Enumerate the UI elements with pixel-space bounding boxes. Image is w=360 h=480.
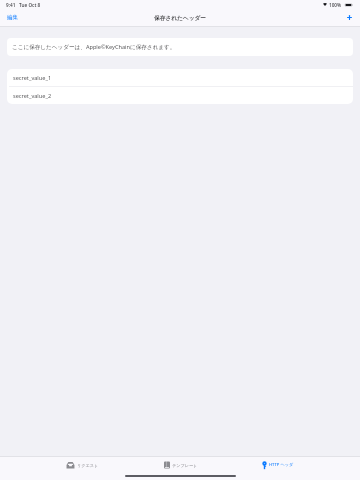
staticText: 100%	[329, 2, 342, 8]
staticText: secret_value_2	[13, 92, 52, 100]
staticText: リクエスト	[77, 463, 99, 468]
staticText: HTTP ヘッダ	[269, 462, 294, 468]
staticText: Tue Oct 8	[19, 2, 41, 8]
staticText: 9:41	[6, 2, 16, 8]
staticText: ここに保存したヘッダーは、Apple©KeyChainに保存されます。	[12, 43, 176, 51]
button[interactable]: 編集	[0, 13, 24, 24]
staticText: 編集	[7, 14, 18, 21]
staticText: テンプレート	[172, 463, 198, 468]
button[interactable]: リクエスト	[65, 460, 100, 470]
button[interactable]: テンプレート	[163, 460, 199, 470]
staticText: 保存されたヘッダー	[154, 15, 206, 22]
button[interactable]: Add header	[341, 14, 360, 23]
staticText: secret_value_1	[13, 74, 52, 82]
button[interactable]: secret_value_2	[7, 87, 353, 104]
button[interactable]: HTTP ヘッダ	[261, 460, 295, 470]
button[interactable]: secret_value_1	[7, 69, 353, 86]
